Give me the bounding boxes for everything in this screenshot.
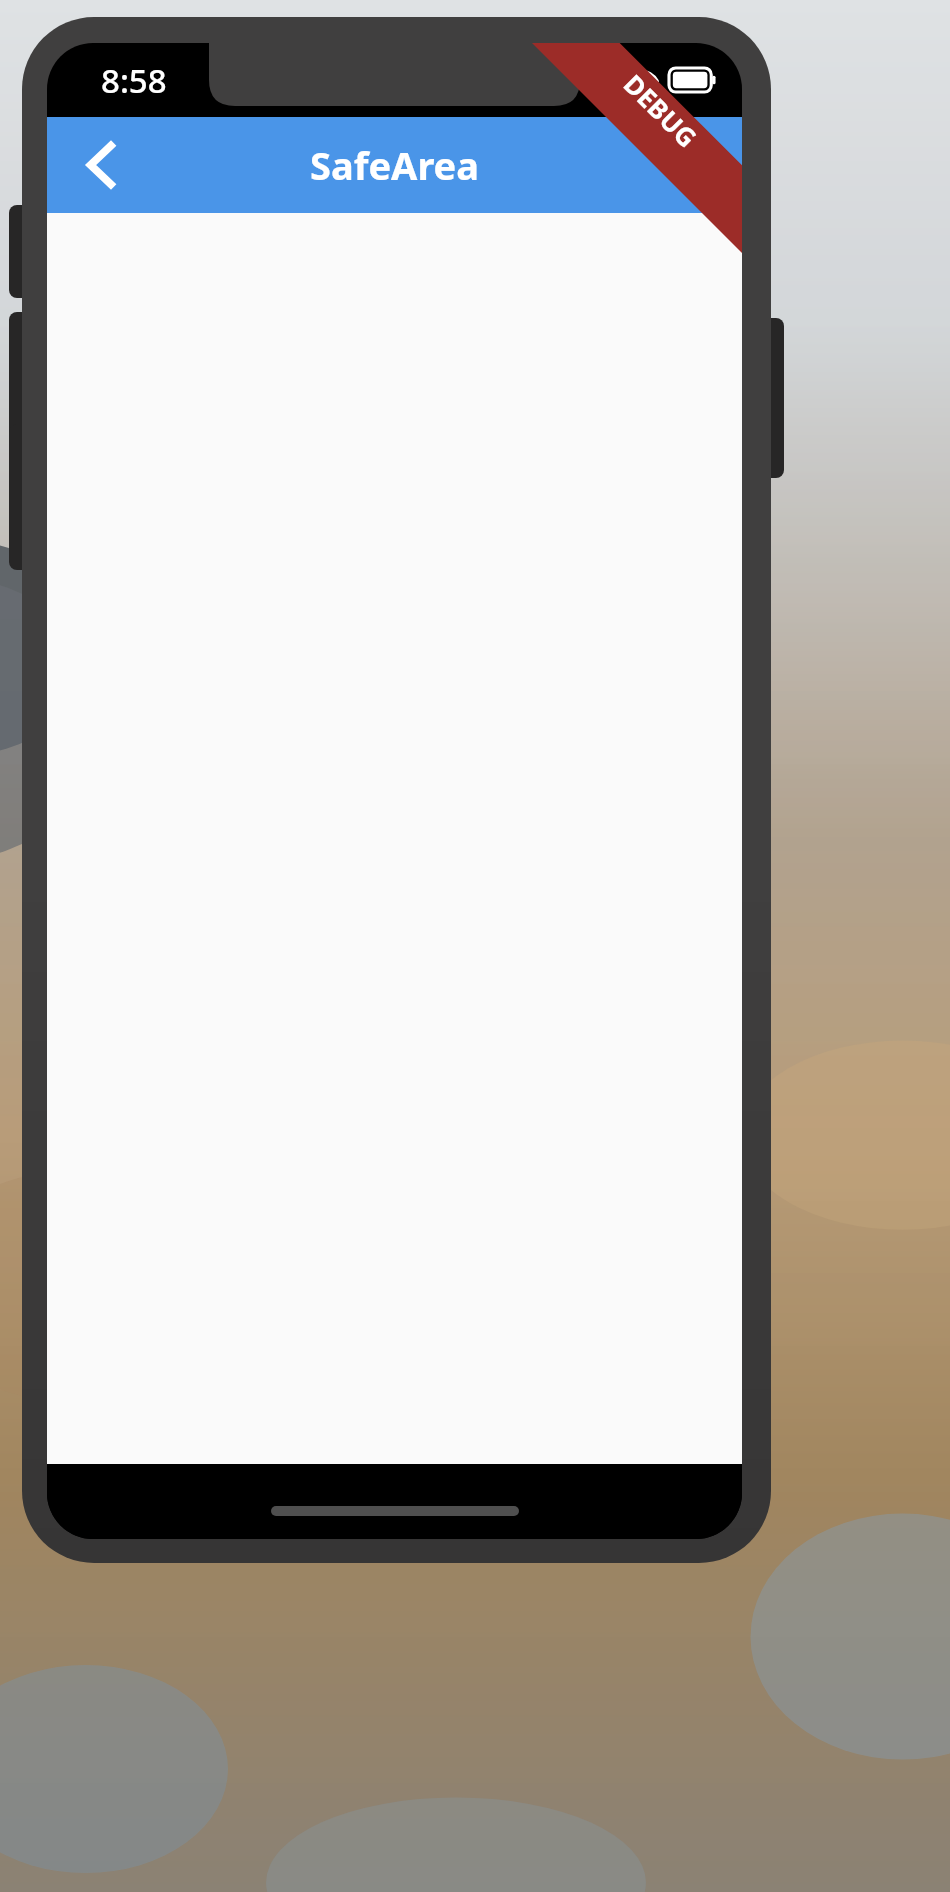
staticText: 8:58 [101,58,167,103]
button[interactable]: Back [65,129,137,201]
staticText: SafeArea [310,139,480,191]
staticText: DEBUG [617,66,705,155]
